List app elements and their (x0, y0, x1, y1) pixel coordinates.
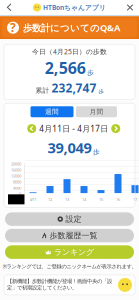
staticText: ? (10, 19, 16, 35)
button[interactable]: Next week (111, 124, 120, 133)
button[interactable]: ランキング (5, 245, 134, 259)
staticText: 歩数履歴一覧 (50, 231, 98, 240)
staticText: 歩数計についてのQ&A (23, 21, 120, 34)
staticText: ※ランキングでは、ご登録のニックネームが表示されます。 (2, 263, 136, 270)
staticText: 0 (19, 191, 21, 197)
staticText: 設定 (66, 214, 82, 224)
staticText: ランキング (54, 247, 94, 257)
staticText: 今日（4月25日）の歩数 (32, 47, 107, 56)
staticText: 4/11 (29, 197, 36, 202)
button[interactable]: 月間 (76, 106, 117, 117)
staticText: 4000 (13, 185, 21, 191)
staticText: HTBonちゃんアプリ (43, 3, 106, 12)
staticText: 12000 (11, 173, 21, 179)
staticText: 13 (65, 197, 69, 202)
staticText: 16000 (11, 167, 21, 173)
button[interactable]: Previous week (27, 124, 36, 133)
staticText: 累計 (35, 86, 49, 95)
button[interactable]: 歩数履歴一覧 (5, 229, 134, 242)
staticText: 16 (116, 197, 120, 202)
staticText: 39,049 (47, 138, 91, 157)
staticText: 14 (82, 197, 86, 202)
staticText: 15 (99, 197, 103, 202)
button[interactable]: 設定 (5, 212, 134, 226)
staticText: 8000 (13, 179, 21, 185)
button[interactable]: 週間 (30, 106, 73, 117)
staticText: 週間 (45, 108, 59, 116)
staticText: 20000 (11, 161, 21, 167)
staticText: 月間 (89, 108, 103, 116)
staticText: 歩 (98, 88, 103, 95)
staticText: 歩 (93, 148, 100, 156)
button[interactable]: Back (0, 0, 18, 15)
staticText: 17 (133, 197, 137, 202)
staticText: 歩 (87, 69, 94, 77)
staticText: 4月11日 - 4月17日 (39, 123, 108, 134)
staticText: 232,747 (51, 80, 96, 96)
staticText: 2,566 (45, 57, 86, 78)
staticText: 12 (48, 197, 52, 202)
button[interactable]: ? (0, 16, 139, 39)
staticText: 【新機能】歩数計機能が登場！画面中央の「設定」で初期設定してください。 (7, 278, 112, 291)
button[interactable]: Close (121, 0, 139, 15)
